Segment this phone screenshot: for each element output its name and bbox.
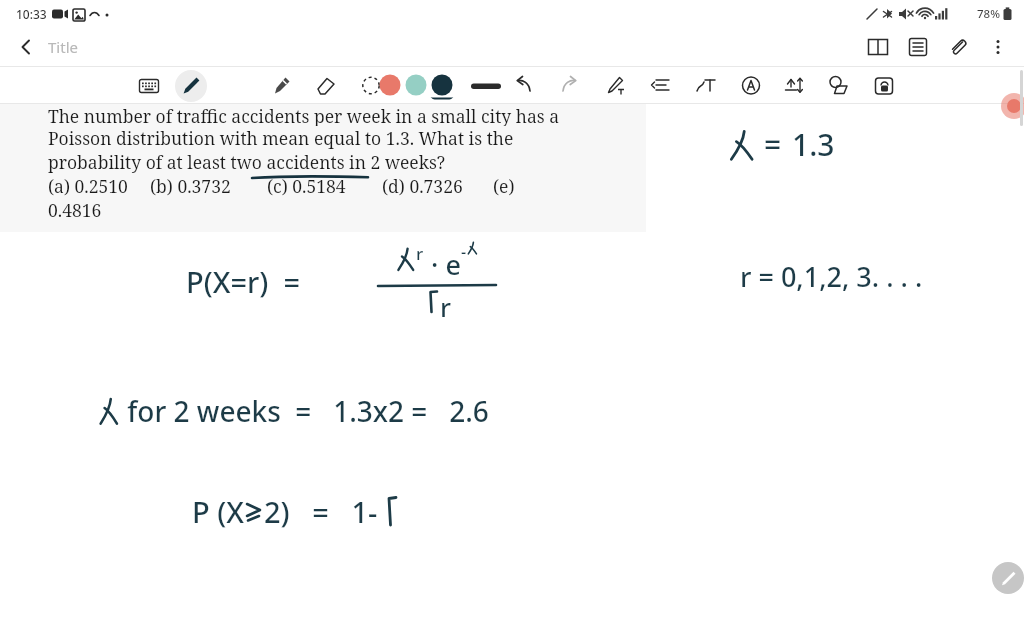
button[interactable]: Lasso select [355,70,387,102]
button[interactable]: Title [48,37,78,57]
button[interactable]: Stroke width [460,68,512,104]
button[interactable]: Mint colour [400,70,432,102]
button[interactable]: Reading view [858,28,898,66]
button[interactable]: Spacing [778,70,810,102]
button[interactable]: Pen settings [600,70,632,102]
button[interactable]: Lock [868,70,900,102]
button[interactable]: Annotate [735,70,767,102]
staticText: 78% [977,6,1000,22]
button[interactable]: Attach [938,28,978,66]
button[interactable]: Edit [992,562,1024,594]
staticText: 10:33 [16,6,47,22]
button[interactable]: Keyboard [133,70,165,102]
staticText: = [764,124,782,165]
staticText: (d) 0.7326 [382,174,463,198]
staticText: · e [424,246,461,283]
staticText: r [416,242,424,265]
button[interactable]: Highlighter [265,70,297,102]
button[interactable]: Coral colour [374,70,406,102]
button[interactable]: Text convert [690,70,722,102]
button[interactable]: Alignment [645,70,677,102]
staticText: (e) [493,174,515,198]
button[interactable]: Undo [508,70,540,102]
staticText: (c) 0.5184 [267,174,346,198]
button[interactable]: Shapes [823,70,855,102]
staticText: P (X [192,492,244,531]
staticText: - [461,241,467,263]
staticText: (b) 0.3732 [150,174,231,198]
staticText: 2) = 1- [264,492,385,531]
staticText: for 2 weeks = 1.3x2 = 2.6 [120,392,489,430]
button[interactable]: Navy colour [426,70,458,102]
button[interactable]: Pen [175,70,207,102]
button[interactable]: Eraser [310,70,342,102]
staticText: r = 0,1,2, 3. . . . [740,258,923,295]
staticText: The number of traffic accidents per week… [48,104,560,126]
staticText: 0.4816 [48,198,102,222]
staticText: r [440,289,451,324]
button[interactable]: Back [8,29,44,65]
staticText: Poisson distribution with mean equal to … [48,126,514,150]
staticText: probability of at least two accidents in… [48,150,446,174]
staticText: (a) 0.2510 [48,174,128,198]
button[interactable]: Redo [553,70,585,102]
staticText: 1.3 [792,124,835,165]
button[interactable]: Notes list [898,28,938,66]
button[interactable]: More options [978,28,1018,66]
staticText: P(X=r) = [186,262,301,301]
